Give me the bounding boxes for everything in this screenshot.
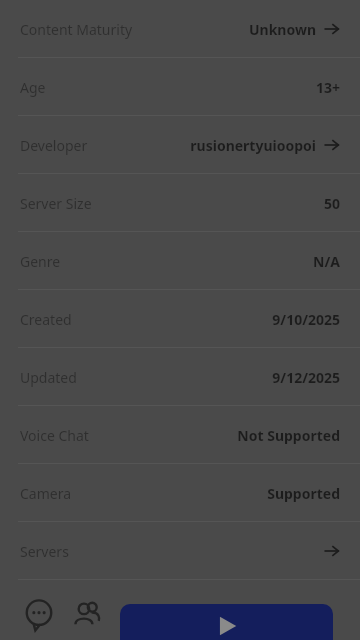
- button[interactable]: Age: [0, 58, 360, 116]
- staticText: Camera: [20, 484, 72, 503]
- staticText: 9/10/2025: [272, 310, 340, 329]
- staticText: Content Maturity: [20, 20, 133, 39]
- button[interactable]: Updated: [0, 348, 360, 406]
- button[interactable]: Developer: [0, 116, 360, 174]
- button[interactable]: Friends: [70, 597, 104, 631]
- button[interactable]: Voice Chat: [0, 406, 360, 464]
- staticText: Genre: [20, 252, 61, 271]
- staticText: Supported: [267, 484, 340, 503]
- staticText: Voice Chat: [20, 426, 89, 445]
- button[interactable]: Genre: [0, 232, 360, 290]
- staticText: Age: [20, 78, 46, 97]
- staticText: Servers: [20, 542, 69, 561]
- button[interactable]: Created: [0, 290, 360, 348]
- staticText: Updated: [20, 368, 77, 387]
- button[interactable]: Play: [120, 604, 333, 640]
- staticText: N/A: [313, 252, 340, 271]
- staticText: Server Size: [20, 194, 92, 213]
- button[interactable]: Servers: [0, 522, 360, 580]
- staticText: Developer: [20, 136, 88, 155]
- button[interactable]: Server Size: [0, 174, 360, 232]
- staticText: 9/12/2025: [272, 368, 340, 387]
- staticText: rusionertyuioopoi: [190, 136, 316, 155]
- button[interactable]: Camera: [0, 464, 360, 522]
- staticText: 50: [323, 194, 340, 213]
- button[interactable]: Chat: [22, 597, 56, 631]
- staticText: Not Supported: [237, 426, 340, 445]
- button[interactable]: Content Maturity: [0, 0, 360, 58]
- staticText: Unknown: [248, 20, 316, 39]
- staticText: 13+: [315, 78, 340, 97]
- staticText: Created: [20, 310, 72, 329]
